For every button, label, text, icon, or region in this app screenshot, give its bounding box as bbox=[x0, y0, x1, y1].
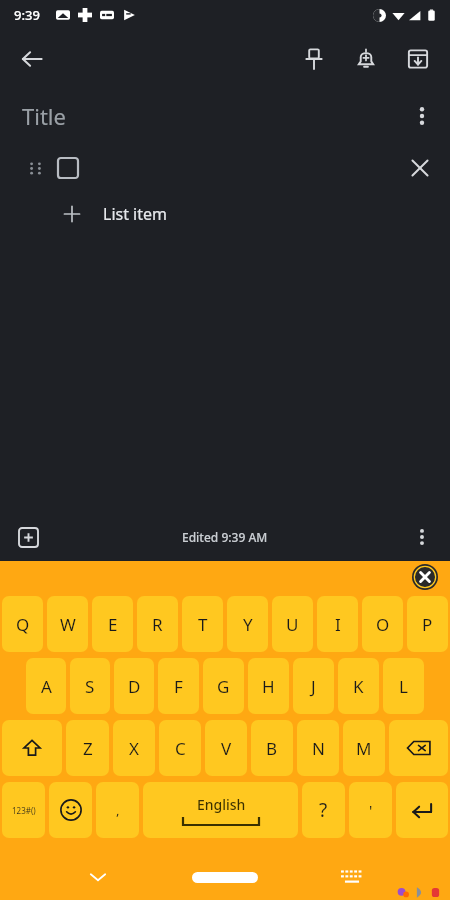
button[interactable]: Title bbox=[22, 101, 66, 131]
staticText: ' bbox=[369, 800, 373, 820]
button[interactable]: Add bbox=[8, 517, 48, 557]
staticText: X bbox=[129, 737, 139, 760]
button[interactable]: Space bbox=[143, 782, 298, 838]
staticText: H bbox=[262, 675, 275, 698]
button[interactable]: B bbox=[251, 720, 293, 776]
staticText: List item bbox=[103, 203, 168, 225]
button[interactable]: V bbox=[205, 720, 247, 776]
button[interactable]: I bbox=[317, 596, 358, 652]
button[interactable]: Remind me bbox=[340, 33, 392, 85]
button[interactable]: U bbox=[272, 596, 313, 652]
button[interactable]: X bbox=[113, 720, 155, 776]
staticText: Y bbox=[243, 613, 253, 636]
staticText: F bbox=[174, 675, 183, 698]
button[interactable]: N bbox=[297, 720, 339, 776]
button[interactable]: Y bbox=[227, 596, 268, 652]
button[interactable]: Z bbox=[66, 720, 109, 776]
staticText: K bbox=[353, 675, 364, 698]
staticText: T bbox=[198, 613, 208, 636]
button[interactable]: E bbox=[92, 596, 133, 652]
staticText: Z bbox=[83, 737, 93, 760]
staticText: L bbox=[399, 675, 408, 698]
staticText: R bbox=[152, 613, 163, 636]
button[interactable]: Title options bbox=[400, 94, 444, 138]
button[interactable]: K bbox=[338, 658, 379, 714]
staticText: N bbox=[312, 737, 325, 760]
button[interactable]: L bbox=[383, 658, 424, 714]
staticText: V bbox=[221, 737, 232, 760]
button[interactable]: Shift bbox=[2, 720, 62, 776]
button[interactable]: O bbox=[362, 596, 403, 652]
staticText: English bbox=[197, 795, 246, 814]
button[interactable]: Switch keyboard bbox=[332, 857, 372, 897]
staticText: M bbox=[356, 737, 372, 760]
button[interactable]: F bbox=[158, 658, 199, 714]
staticText: J bbox=[311, 675, 316, 698]
button[interactable]: T bbox=[182, 596, 223, 652]
button[interactable]: M bbox=[343, 720, 385, 776]
button[interactable]: 123#() bbox=[2, 782, 45, 838]
button[interactable]: ? bbox=[302, 782, 345, 838]
button[interactable]: More options bbox=[402, 517, 442, 557]
button[interactable]: List item bbox=[0, 192, 450, 236]
button[interactable]: J bbox=[293, 658, 334, 714]
button[interactable]: Archive bbox=[392, 33, 444, 85]
staticText: C bbox=[175, 737, 186, 760]
button[interactable]: P bbox=[407, 596, 448, 652]
staticText: I bbox=[335, 613, 341, 636]
staticText: O bbox=[376, 613, 390, 636]
staticText: Q bbox=[16, 613, 30, 636]
button[interactable]: Emoji bbox=[49, 782, 92, 838]
button[interactable]: Pin bbox=[288, 33, 340, 85]
staticText: B bbox=[266, 737, 278, 760]
staticText: G bbox=[217, 675, 230, 698]
staticText: 123#() bbox=[12, 805, 36, 816]
staticText: , bbox=[116, 801, 120, 819]
staticText: P bbox=[422, 613, 433, 636]
button[interactable]: Check item bbox=[52, 152, 84, 184]
button[interactable]: Q bbox=[2, 596, 43, 652]
button[interactable]: Delete item bbox=[400, 148, 440, 188]
button[interactable]: Delete bbox=[389, 720, 448, 776]
button[interactable]: Reorder bbox=[22, 155, 48, 181]
button[interactable]: Enter bbox=[396, 782, 448, 838]
button[interactable]: C bbox=[159, 720, 201, 776]
staticText: 9:39 bbox=[14, 6, 40, 24]
staticText: Edited 9:39 AM bbox=[182, 529, 268, 545]
staticText: E bbox=[108, 613, 118, 636]
button[interactable]: Back bbox=[8, 35, 56, 83]
button[interactable]: A bbox=[26, 658, 66, 714]
button[interactable]: W bbox=[47, 596, 88, 652]
button[interactable]: Home bbox=[192, 872, 258, 883]
button[interactable]: D bbox=[114, 658, 154, 714]
button[interactable]: H bbox=[248, 658, 289, 714]
staticText: A bbox=[41, 675, 52, 698]
button[interactable]: R bbox=[137, 596, 178, 652]
staticText: W bbox=[60, 613, 76, 636]
button[interactable]: , bbox=[96, 782, 139, 838]
staticText: ? bbox=[319, 797, 328, 823]
button[interactable]: S bbox=[70, 658, 110, 714]
staticText: D bbox=[128, 675, 141, 698]
button[interactable]: ' bbox=[349, 782, 392, 838]
staticText: S bbox=[85, 675, 95, 698]
staticText: U bbox=[286, 613, 299, 636]
button[interactable]: Close suggestions bbox=[412, 564, 438, 590]
button[interactable]: G bbox=[203, 658, 244, 714]
button[interactable]: Hide keyboard bbox=[78, 857, 118, 897]
